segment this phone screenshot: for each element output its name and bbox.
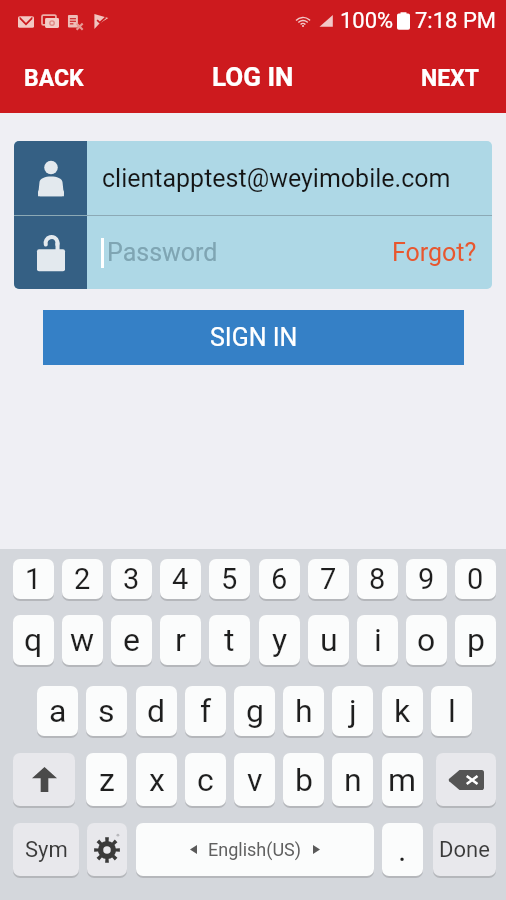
button[interactable]: Backspace: [436, 753, 496, 806]
button[interactable]: Forgot?: [380, 216, 492, 289]
staticText: i: [374, 621, 382, 659]
staticText: Done: [439, 837, 490, 863]
staticText: d: [147, 692, 166, 730]
staticText: BACK: [24, 65, 84, 92]
staticText: q: [24, 621, 43, 659]
button[interactable]: 8: [357, 559, 398, 599]
button[interactable]: x: [136, 753, 177, 806]
staticText: y: [272, 621, 288, 659]
staticText: o: [417, 621, 436, 659]
staticText: m: [388, 761, 417, 799]
staticText: 9: [418, 562, 435, 596]
staticText: 1: [25, 562, 42, 596]
staticText: a: [49, 692, 67, 730]
staticText: Password: [107, 238, 218, 267]
staticText: k: [394, 692, 411, 730]
button[interactable]: 3: [111, 559, 152, 599]
button[interactable]: 7: [308, 559, 349, 599]
staticText: LOG IN: [212, 62, 294, 92]
staticText: u: [320, 621, 338, 659]
button[interactable]: d: [136, 686, 177, 736]
button[interactable]: y: [259, 615, 300, 665]
button[interactable]: f: [185, 686, 226, 736]
button[interactable]: 0: [455, 559, 496, 599]
staticText: 2: [74, 562, 91, 596]
staticText: j: [349, 692, 357, 730]
button[interactable]: b: [283, 753, 324, 806]
other: Shift: [32, 767, 57, 792]
button[interactable]: u: [308, 615, 349, 665]
staticText: s: [98, 692, 115, 730]
staticText: b: [295, 761, 313, 799]
button[interactable]: Input settings: [87, 823, 127, 876]
button[interactable]: e: [111, 615, 152, 665]
staticText: h: [295, 692, 313, 730]
button[interactable]: s: [86, 686, 127, 736]
staticText: Forgot?: [392, 238, 477, 267]
staticText: n: [344, 761, 362, 799]
staticText: c: [197, 761, 214, 799]
button[interactable]: English(US): [136, 823, 374, 876]
button[interactable]: q: [13, 615, 54, 665]
staticText: English(US): [208, 839, 302, 860]
staticText: 3: [123, 562, 140, 596]
staticText: x: [149, 761, 165, 799]
staticText: f: [200, 692, 212, 730]
staticText: .: [398, 831, 407, 869]
button[interactable]: o: [406, 615, 447, 665]
staticText: v: [247, 761, 263, 799]
button[interactable]: c: [185, 753, 226, 806]
staticText: 4: [172, 562, 189, 596]
staticText: 100%: [340, 8, 394, 34]
button[interactable]: a: [37, 686, 78, 736]
button[interactable]: w: [62, 615, 103, 665]
staticText: g: [246, 692, 264, 730]
button[interactable]: v: [234, 753, 275, 806]
button[interactable]: i: [357, 615, 398, 665]
staticText: NEXT: [421, 65, 480, 92]
staticText: l: [448, 692, 456, 730]
button[interactable]: j: [332, 686, 373, 736]
button[interactable]: r: [160, 615, 201, 665]
staticText: 8: [369, 562, 386, 596]
staticText: Sym: [25, 837, 68, 863]
staticText: SIGN IN: [210, 323, 298, 352]
button[interactable]: t: [209, 615, 250, 665]
staticText: p: [467, 621, 485, 659]
button[interactable]: k: [382, 686, 423, 736]
button[interactable]: Email field: [14, 141, 492, 215]
button[interactable]: 6: [259, 559, 300, 599]
staticText: 0: [467, 562, 484, 596]
other: Input settings: [94, 837, 120, 863]
button[interactable]: 1: [13, 559, 54, 599]
other: Backspace: [448, 770, 484, 790]
staticText: z: [99, 761, 115, 799]
staticText: t: [224, 621, 235, 659]
button[interactable]: z: [86, 753, 127, 806]
staticText: 6: [271, 562, 288, 596]
button[interactable]: NEXT: [401, 49, 506, 113]
button[interactable]: SIGN IN: [43, 310, 464, 365]
button[interactable]: m: [382, 753, 423, 806]
button[interactable]: BACK: [0, 49, 104, 113]
button[interactable]: 4: [160, 559, 201, 599]
button[interactable]: Password field: [14, 216, 380, 289]
staticText: 7: [320, 562, 337, 596]
button[interactable]: 5: [209, 559, 250, 599]
button[interactable]: n: [332, 753, 373, 806]
button[interactable]: g: [234, 686, 275, 736]
staticText: clientapptest@weyimobile.com: [102, 164, 451, 193]
button[interactable]: 2: [62, 559, 103, 599]
button[interactable]: .: [382, 823, 423, 876]
button[interactable]: Done: [433, 823, 496, 876]
button[interactable]: 9: [406, 559, 447, 599]
button[interactable]: l: [431, 686, 472, 736]
staticText: e: [123, 621, 140, 659]
staticText: r: [175, 621, 186, 659]
button[interactable]: Shift: [13, 753, 75, 806]
staticText: 7:18 PM: [415, 8, 496, 34]
staticText: 5: [221, 562, 238, 596]
button[interactable]: p: [455, 615, 496, 665]
button[interactable]: Sym: [13, 823, 79, 876]
button[interactable]: h: [283, 686, 324, 736]
